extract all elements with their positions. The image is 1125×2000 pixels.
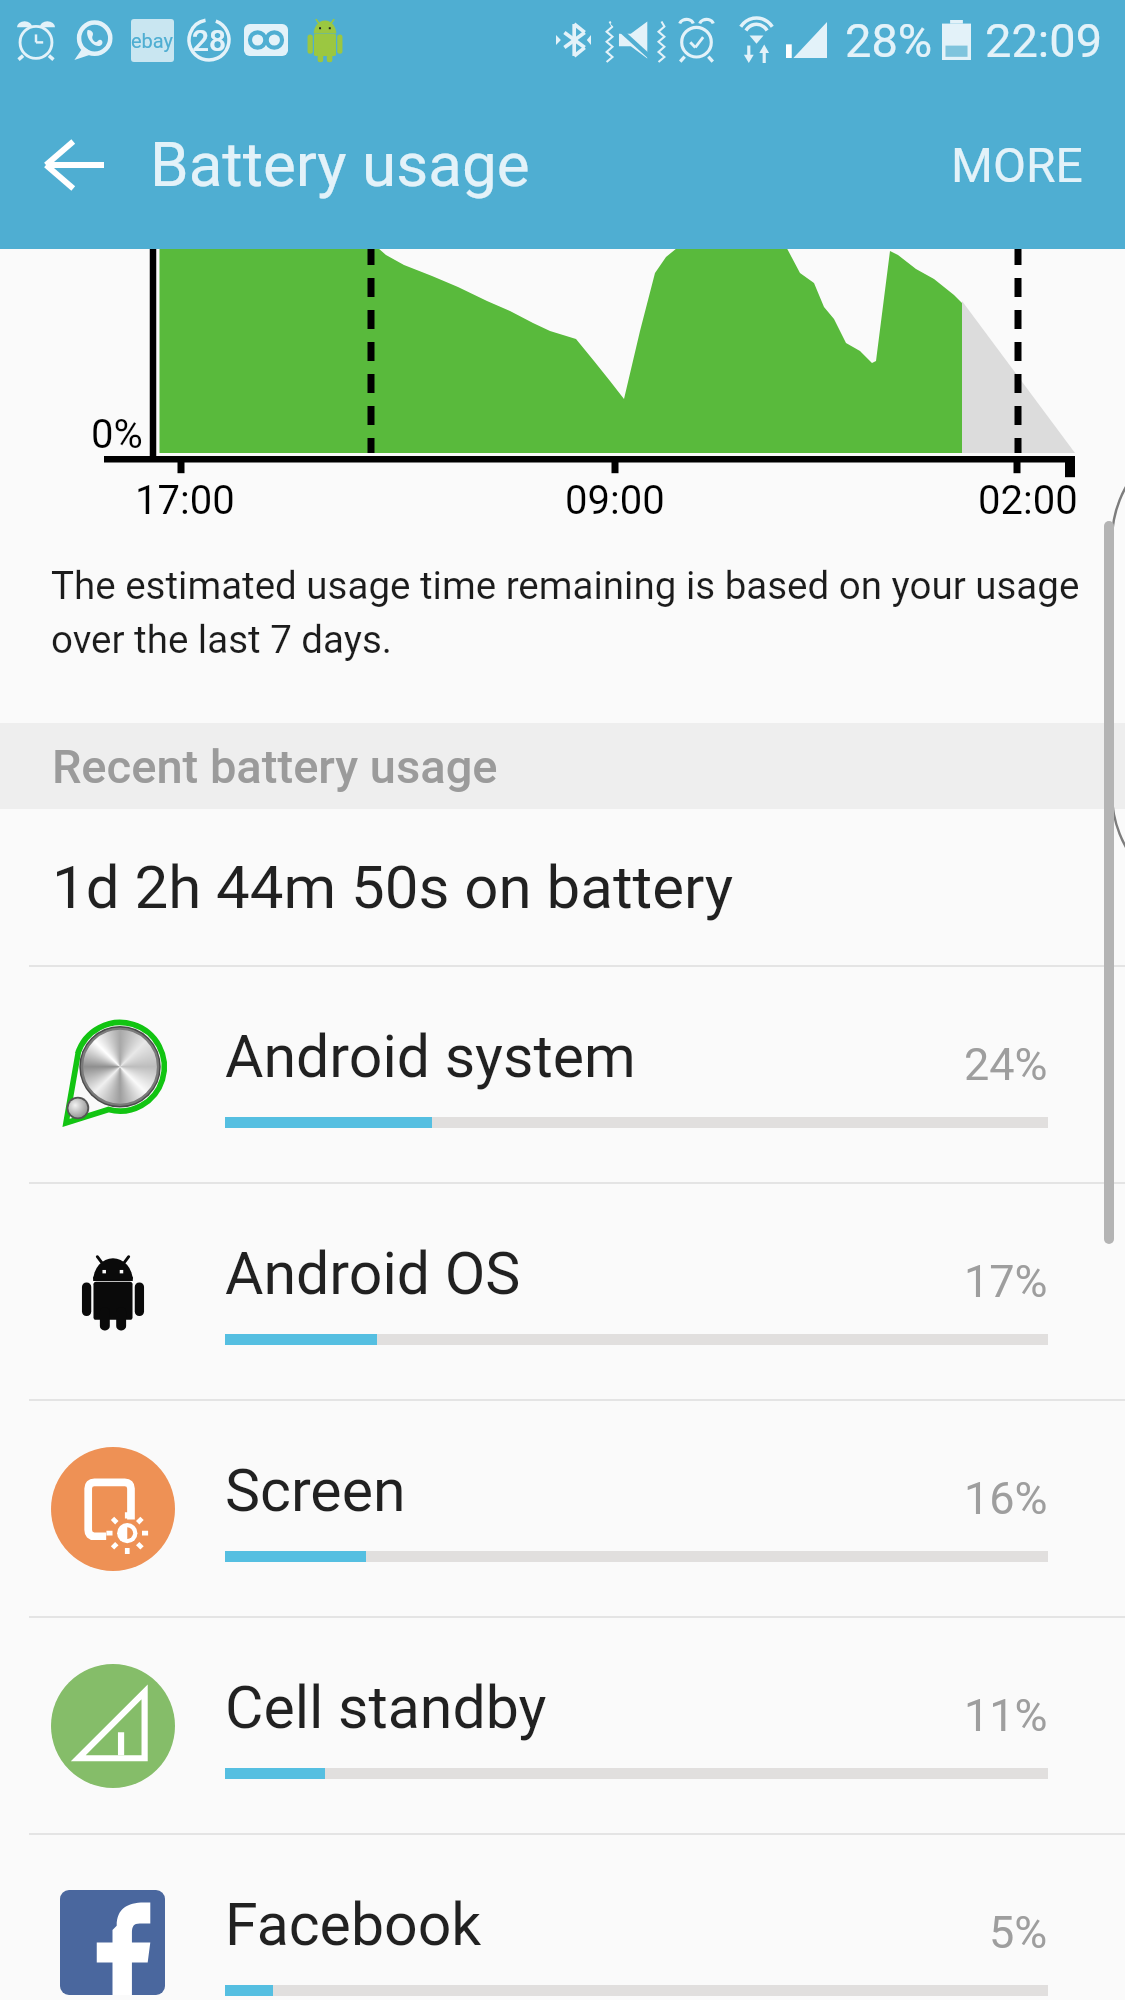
staticText: 24% [964, 1038, 1048, 1091]
staticText: Android OS [225, 1239, 521, 1308]
button[interactable]: Android OS [0, 1184, 1125, 1399]
staticText: 0% [91, 411, 143, 458]
staticText: 5% [989, 1906, 1048, 1959]
staticText: 17% [964, 1255, 1048, 1308]
staticText: 1d 2h 44m 50s on battery [52, 852, 734, 922]
staticText: Battery usage [150, 128, 530, 201]
staticText: 22:09 [985, 13, 1103, 68]
staticText: Android system [225, 1022, 636, 1091]
staticText: Cell standby [225, 1673, 547, 1742]
button[interactable]: Screen [0, 1401, 1125, 1616]
staticText: Screen [225, 1456, 406, 1525]
staticText: 16% [964, 1472, 1048, 1525]
staticText: 28% [845, 13, 933, 68]
staticText: Recent battery usage [52, 739, 498, 794]
staticText: MORE [951, 137, 1083, 193]
button[interactable]: MORE [909, 80, 1125, 249]
staticText: The estimated usage time remaining is ba… [51, 563, 1095, 662]
button[interactable]: Navigate up [0, 80, 150, 249]
staticText: 17:00 [135, 477, 235, 524]
staticText: 28 [192, 23, 227, 58]
staticText: 09:00 [565, 477, 665, 524]
button[interactable]: Facebook [0, 1835, 1125, 2000]
staticText: 11% [964, 1689, 1048, 1742]
staticText: 02:00 [978, 477, 1078, 524]
button[interactable]: Cell standby [0, 1618, 1125, 1833]
button[interactable]: Android system [0, 967, 1125, 1182]
staticText: ebay [131, 29, 174, 52]
staticText: Facebook [225, 1890, 482, 1959]
